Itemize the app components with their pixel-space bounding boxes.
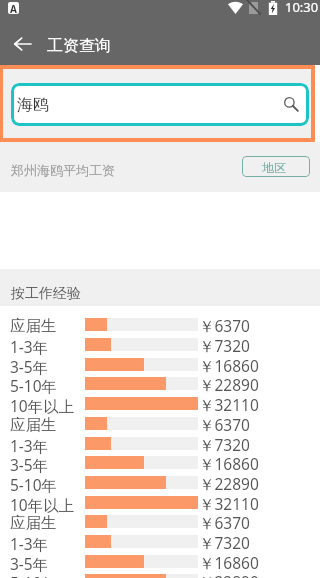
staticText: 工资查询: [47, 36, 111, 56]
staticText: ￥7320: [199, 434, 250, 454]
staticText: ￥32110: [199, 493, 259, 513]
button[interactable]: Search: [280, 93, 302, 115]
button[interactable]: 应届生: [0, 512, 320, 532]
button[interactable]: 3-5年: [0, 552, 320, 572]
staticText: 10年以上: [10, 494, 75, 514]
staticText: 地区: [262, 160, 286, 175]
button[interactable]: 5-10年: [0, 473, 320, 493]
button[interactable]: 海鸥: [11, 83, 309, 126]
staticText: ￥16860: [199, 453, 259, 473]
staticText: ￥6370: [199, 315, 250, 335]
staticText: ￥7320: [199, 335, 250, 355]
staticText: 1-3年: [10, 435, 49, 455]
staticText: 5-10年: [10, 474, 58, 494]
button[interactable]: 3-5年: [0, 355, 320, 375]
button[interactable]: 1-3年: [0, 434, 320, 454]
staticText: 5-10年: [10, 375, 58, 395]
staticText: 3-5年: [10, 356, 49, 376]
staticText: 应届生: [10, 316, 57, 336]
staticText: ￥22890: [199, 374, 259, 394]
staticText: 10年以上: [10, 395, 75, 415]
button[interactable]: 应届生: [0, 414, 320, 434]
button[interactable]: 5-10年: [0, 571, 320, 578]
staticText: ￥22890: [199, 571, 259, 578]
staticText: 应届生: [10, 513, 57, 533]
button[interactable]: 应届生: [0, 315, 320, 335]
staticText: 1-3年: [10, 533, 49, 553]
staticText: ￥22890: [199, 473, 259, 493]
button[interactable]: 5-10年: [0, 374, 320, 394]
button[interactable]: 10年以上: [0, 394, 320, 414]
button[interactable]: 10年以上: [0, 493, 320, 513]
staticText: 郑州海鸥平均工资: [11, 162, 115, 178]
staticText: ￥32110: [199, 394, 259, 414]
staticText: ￥16860: [199, 355, 259, 375]
staticText: 3-5年: [10, 454, 49, 474]
staticText: 海鸥: [17, 95, 49, 115]
staticText: ￥6370: [199, 512, 250, 532]
staticText: 1-3年: [10, 336, 49, 356]
staticText: ￥7320: [199, 532, 250, 552]
staticText: 5-10年: [10, 572, 58, 578]
staticText: A: [10, 2, 17, 14]
staticText: ￥6370: [199, 414, 250, 434]
button[interactable]: 3-5年: [0, 453, 320, 473]
staticText: 按工作经验: [11, 285, 81, 303]
staticText: ￥16860: [199, 552, 259, 572]
button[interactable]: Back: [6, 30, 38, 58]
staticText: 3-5年: [10, 553, 49, 573]
button[interactable]: 地区: [242, 156, 310, 177]
staticText: 10:30: [285, 0, 319, 16]
button[interactable]: 1-3年: [0, 532, 320, 552]
button[interactable]: 1-3年: [0, 335, 320, 355]
staticText: 应届生: [10, 415, 57, 435]
